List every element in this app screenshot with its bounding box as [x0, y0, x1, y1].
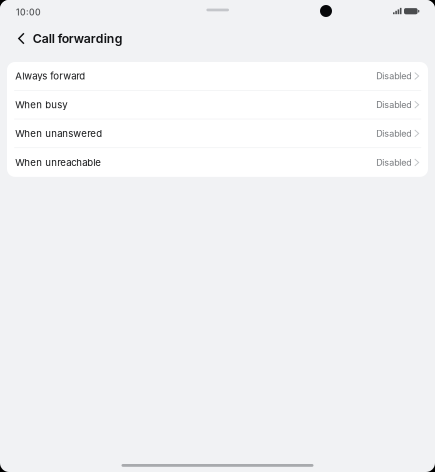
staticText: Disabled	[376, 157, 411, 168]
staticText: When busy	[15, 99, 67, 110]
staticText: Disabled	[376, 71, 411, 81]
staticText: Disabled	[376, 128, 411, 139]
button[interactable]: When unreachable	[7, 148, 428, 177]
staticText: When unanswered	[15, 128, 102, 139]
staticText: Disabled	[376, 99, 411, 110]
button[interactable]: When unanswered	[7, 119, 428, 148]
button[interactable]: When busy	[7, 91, 428, 119]
staticText: When unreachable	[15, 157, 101, 168]
button[interactable]: Back	[0, 25, 33, 51]
staticText: Always forward	[15, 70, 85, 82]
staticText: 10:00	[16, 7, 41, 17]
button[interactable]: Always forward	[7, 62, 428, 91]
staticText: Call forwarding	[33, 31, 123, 46]
